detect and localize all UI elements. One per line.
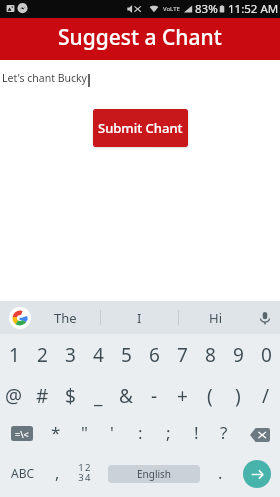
- button[interactable]: /: [252, 375, 280, 416]
- staticText: .: [218, 462, 223, 484]
- staticText: :: [138, 421, 143, 444]
- staticText: #: [36, 383, 49, 409]
- staticText: VoLTE: [163, 5, 180, 13]
- button[interactable]: 8: [196, 334, 224, 375]
- staticText: ;: [166, 421, 171, 444]
- button[interactable]: 1: [0, 334, 28, 375]
- button[interactable]: 7: [168, 334, 196, 375]
- button[interactable]: -: [140, 375, 168, 416]
- staticText: &: [119, 383, 133, 409]
- staticText: $: [65, 383, 76, 409]
- button[interactable]: @: [0, 375, 28, 416]
- staticText: 3: [65, 342, 76, 368]
- staticText: 83%: [195, 1, 218, 17]
- button[interactable]: 0: [252, 334, 280, 375]
- button[interactable]: 9: [224, 334, 252, 375]
- staticText: ?: [220, 421, 228, 444]
- button[interactable]: ,: [46, 452, 69, 493]
- staticText: 6: [149, 342, 160, 368]
- staticText: _: [94, 383, 103, 409]
- button[interactable]: I: [101, 301, 178, 334]
- button[interactable]: Enter: [243, 460, 271, 488]
- button[interactable]: (: [196, 375, 224, 416]
- button[interactable]: !: [182, 412, 210, 453]
- staticText: =\<: [15, 428, 29, 440]
- button[interactable]: The: [37, 301, 93, 334]
- button[interactable]: 5: [112, 334, 140, 375]
- staticText: ': [110, 421, 114, 444]
- staticText: The: [54, 309, 77, 327]
- button[interactable]: 3: [56, 334, 84, 375]
- staticText: 0: [261, 342, 272, 368]
- button[interactable]: Hi: [178, 301, 252, 334]
- staticText: (: [207, 383, 213, 409]
- button[interactable]: _: [84, 375, 112, 416]
- button[interactable]: +: [168, 375, 196, 416]
- button[interactable]: ABC: [0, 452, 46, 493]
- staticText: 2: [37, 342, 48, 368]
- button[interactable]: English: [108, 465, 200, 483]
- button[interactable]: Submit Chant: [93, 109, 188, 147]
- button[interactable]: #: [28, 375, 56, 416]
- button[interactable]: :: [126, 412, 154, 453]
- button[interactable]: $: [56, 375, 84, 416]
- staticText: @: [5, 383, 23, 409]
- button[interactable]: 4: [84, 334, 112, 375]
- button[interactable]: ;: [154, 412, 182, 453]
- staticText: +: [177, 383, 188, 409]
- button[interactable]: More symbols: [0, 412, 42, 453]
- button[interactable]: 2: [28, 334, 56, 375]
- staticText: English: [137, 467, 172, 481]
- staticText: 8: [205, 342, 216, 368]
- staticText: 12 34: [78, 461, 92, 484]
- staticText: 9: [233, 342, 244, 368]
- staticText: 1: [9, 342, 20, 368]
- button[interactable]: &: [112, 375, 140, 416]
- staticText: 7: [177, 342, 188, 368]
- button[interactable]: Numbers: [69, 452, 101, 493]
- staticText: 11:52 AM: [228, 1, 279, 17]
- staticText: /: [262, 383, 270, 409]
- button[interactable]: .: [207, 452, 233, 493]
- staticText: Submit Chant: [98, 119, 183, 137]
- button[interactable]: Voice input: [252, 301, 278, 334]
- button[interactable]: *: [42, 412, 70, 453]
- staticText: 5: [121, 342, 132, 368]
- staticText: !: [194, 421, 199, 444]
- button[interactable]: ): [224, 375, 252, 416]
- button[interactable]: ': [98, 412, 126, 453]
- button[interactable]: Delete: [238, 412, 280, 453]
- staticText: ABC: [11, 465, 35, 481]
- staticText: *: [51, 421, 61, 444]
- staticText: 4: [93, 342, 104, 368]
- button[interactable]: 6: [140, 334, 168, 375]
- staticText: I: [137, 309, 142, 327]
- staticText: ": [81, 421, 88, 444]
- staticText: Suggest a Chant: [58, 23, 222, 52]
- button[interactable]: Google: [8, 301, 32, 334]
- staticText: ): [235, 383, 241, 409]
- button[interactable]: ?: [210, 412, 238, 453]
- button[interactable]: ": [70, 412, 98, 453]
- staticText: Hi: [209, 309, 222, 327]
- staticText: Let's chant Bucky!: [2, 71, 90, 85]
- staticText: -: [151, 383, 158, 409]
- staticText: ,: [55, 462, 60, 484]
